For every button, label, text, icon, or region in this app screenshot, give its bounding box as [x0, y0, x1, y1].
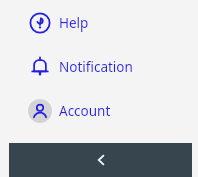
- staticText: Notification: [59, 58, 133, 76]
- button[interactable]: Back: [9, 143, 192, 177]
- button[interactable]: Account: [28, 99, 198, 123]
- button[interactable]: Notification: [28, 55, 198, 79]
- staticText: Help: [59, 14, 89, 32]
- button[interactable]: Help: [28, 11, 198, 35]
- staticText: Account: [59, 102, 111, 120]
